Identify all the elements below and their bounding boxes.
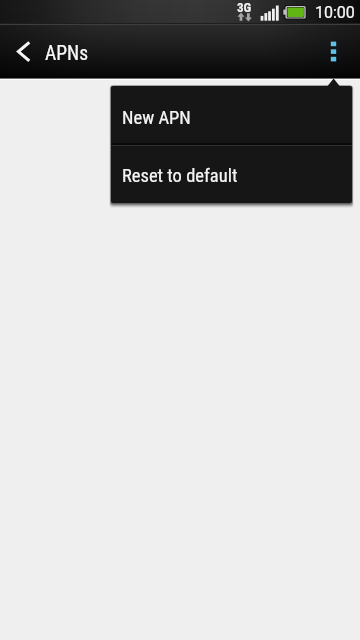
staticText: New APN xyxy=(122,107,191,129)
staticText: 3G xyxy=(237,0,252,15)
staticText: 10:00 xyxy=(315,3,355,22)
button[interactable]: Reset to default xyxy=(111,146,352,203)
staticText: Reset to default xyxy=(122,165,238,187)
button[interactable]: Navigate up xyxy=(0,25,44,78)
button[interactable]: More options xyxy=(314,25,360,78)
staticText: APNs xyxy=(45,42,89,65)
button[interactable]: New APN xyxy=(111,86,352,143)
